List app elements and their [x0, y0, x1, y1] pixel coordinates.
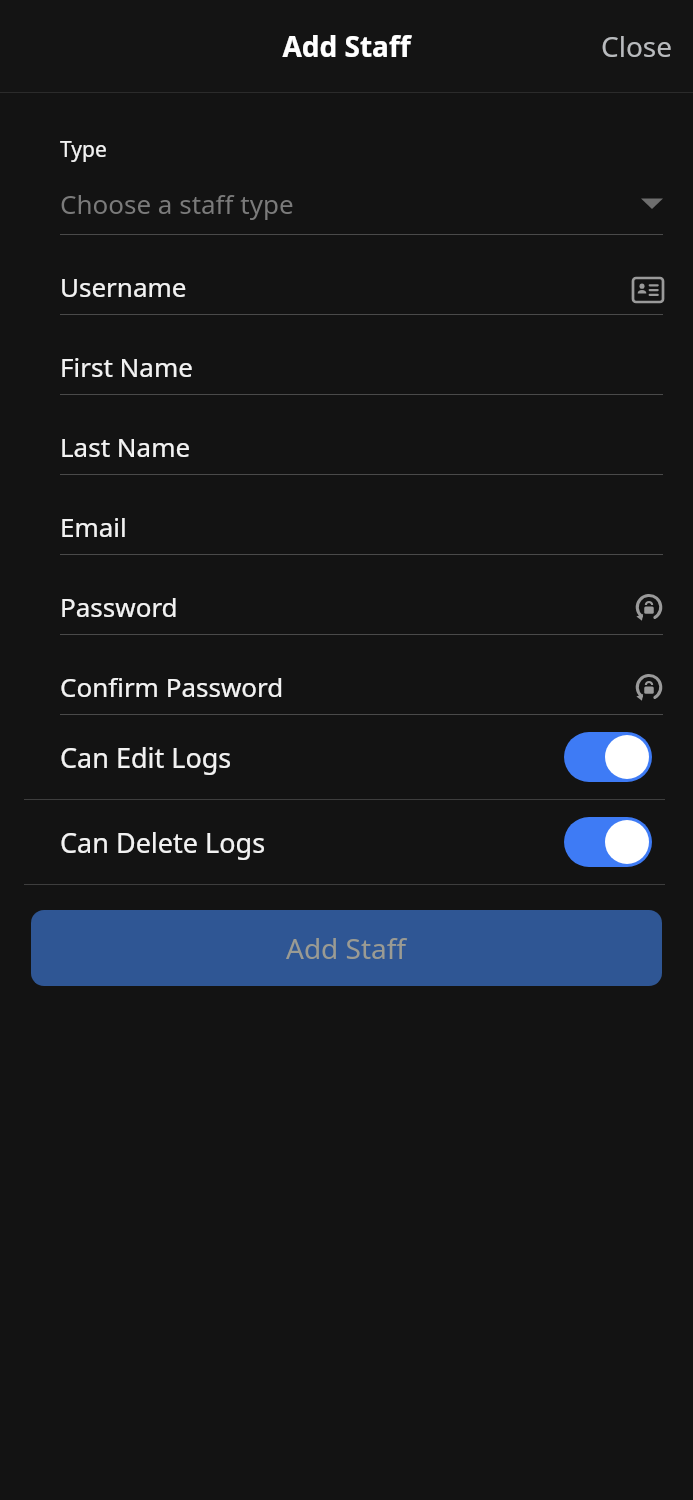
other: Choose contact — [633, 278, 663, 302]
button[interactable]: Add Staff — [31, 910, 662, 986]
staticText: Add Staff — [286, 929, 407, 967]
button[interactable]: Username — [0, 235, 693, 315]
other: Toggle — [564, 817, 652, 867]
button[interactable]: Can Edit Logs — [0, 715, 693, 799]
other: Generate password — [635, 594, 663, 624]
staticText: Password — [60, 589, 178, 624]
staticText: Can Delete Logs — [60, 824, 266, 861]
button[interactable]: Choose a staff type — [0, 182, 693, 224]
staticText: Close — [601, 27, 673, 65]
staticText: Add Staff — [282, 27, 411, 65]
other: Toggle — [564, 732, 652, 782]
button[interactable]: Close — [581, 17, 693, 75]
button[interactable]: Confirm Password — [0, 635, 693, 715]
staticText: First Name — [60, 349, 193, 384]
button[interactable]: Can Delete Logs — [0, 800, 693, 884]
staticText: Last Name — [60, 429, 191, 464]
staticText: Choose a staff type — [60, 186, 294, 221]
staticText: Type — [60, 135, 107, 164]
button[interactable]: Last Name — [0, 395, 693, 475]
staticText: Confirm Password — [60, 669, 284, 704]
button[interactable]: Email — [0, 475, 693, 555]
button[interactable]: Password — [0, 555, 693, 635]
other: Generate password — [635, 674, 663, 704]
button[interactable]: First Name — [0, 315, 693, 395]
staticText: Can Edit Logs — [60, 739, 232, 776]
staticText: Username — [60, 269, 187, 304]
staticText: Email — [60, 509, 127, 544]
